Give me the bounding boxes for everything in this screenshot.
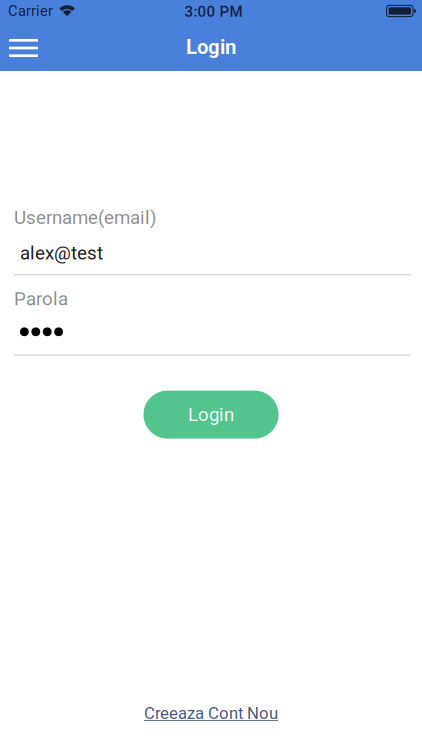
staticText: Carrier	[8, 2, 53, 20]
staticText: Parola	[14, 288, 68, 310]
button[interactable]: Menu	[0, 23, 50, 68]
staticText: Creeaza Cont Nou	[144, 703, 278, 723]
staticText: Login	[188, 404, 234, 426]
staticText: 3:00 PM	[184, 3, 242, 20]
button[interactable]: Login	[143, 391, 278, 439]
staticText: alex@test	[20, 242, 103, 264]
staticText: Login	[186, 35, 236, 59]
staticText: Username(email)	[14, 207, 156, 228]
button[interactable]: Creeaza Cont Nou	[134, 697, 288, 729]
